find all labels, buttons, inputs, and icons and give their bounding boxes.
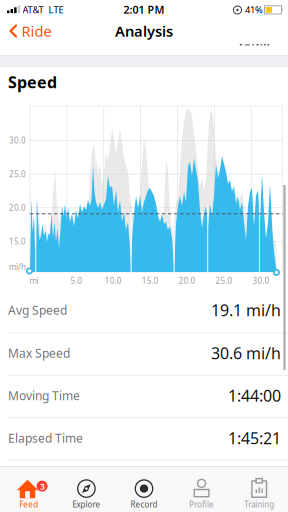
button[interactable]: Profile [173, 466, 230, 512]
staticText: Max Speed [8, 345, 70, 361]
staticText: 20.0 [179, 275, 196, 286]
button[interactable]: Training [230, 466, 288, 512]
staticText: 20.0 [9, 202, 26, 213]
staticText: Profile [189, 499, 214, 510]
staticText: LTE [48, 3, 63, 16]
button[interactable]: Feed [0, 466, 58, 512]
staticText: Explore [72, 499, 100, 510]
staticText: Elapsed Time [8, 430, 83, 446]
staticText: 10.0 [105, 275, 122, 286]
button[interactable]: Back [2, 15, 51, 47]
staticText: Avg Speed [8, 302, 67, 318]
staticText: 30.6 mi/h [211, 342, 281, 364]
staticText: 19.1 mi/h [211, 299, 281, 321]
staticText: mi/h [9, 262, 26, 272]
staticText: Moving Time [8, 387, 80, 403]
staticText: Analysis [115, 21, 173, 41]
staticText: Feed [19, 499, 38, 510]
staticText: 2:01 PM [123, 3, 164, 17]
button[interactable]: Explore [58, 466, 115, 512]
staticText: 25.0 [215, 275, 232, 286]
staticText: 41% [245, 3, 263, 16]
staticText: 5.0 [70, 275, 82, 286]
button[interactable]: Record [115, 466, 173, 512]
staticText: Ride [21, 21, 51, 41]
staticText: Speed [8, 71, 57, 93]
staticText: 3 [40, 480, 45, 492]
staticText: 15.0 [142, 275, 159, 286]
staticText: mi [29, 275, 38, 286]
staticText: Record [130, 499, 157, 510]
staticText: 1:45:21 [228, 427, 281, 449]
staticText: 25.0 [9, 169, 26, 179]
staticText: AT&T [22, 3, 43, 16]
staticText: Training [244, 499, 274, 510]
staticText: 15.0 [9, 236, 26, 247]
staticText: 1:44:00 [228, 385, 281, 406]
staticText: 30.0 [252, 275, 269, 286]
staticText: 30.0 [9, 135, 26, 146]
